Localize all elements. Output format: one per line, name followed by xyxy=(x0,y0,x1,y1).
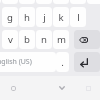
staticText: n xyxy=(41,33,47,46)
button[interactable]: Enter xyxy=(74,52,100,72)
button[interactable]: v xyxy=(2,30,18,49)
button[interactable]: l xyxy=(70,7,86,27)
button[interactable]: j xyxy=(36,7,52,27)
staticText: English (US) xyxy=(0,57,32,67)
button[interactable]: Hide keyboard xyxy=(52,78,71,98)
staticText: m xyxy=(57,33,66,46)
button[interactable]: k xyxy=(53,7,69,27)
button[interactable]: g xyxy=(2,7,18,27)
staticText: k xyxy=(58,11,64,24)
staticText: g xyxy=(7,11,13,24)
staticText: j xyxy=(43,11,46,24)
button[interactable]: m xyxy=(53,30,69,49)
button[interactable]: Home xyxy=(3,78,23,98)
button[interactable]: English (US) xyxy=(0,52,56,72)
button[interactable]: b xyxy=(19,30,35,49)
staticText: h xyxy=(24,11,30,24)
button[interactable]: Backspace xyxy=(74,30,100,49)
staticText: b xyxy=(24,33,30,46)
button[interactable]: n xyxy=(36,30,52,49)
staticText: v xyxy=(8,33,13,46)
staticText: l xyxy=(77,11,80,24)
staticText: . xyxy=(61,56,64,69)
button[interactable]: h xyxy=(19,7,35,27)
button[interactable]: . xyxy=(56,52,69,72)
